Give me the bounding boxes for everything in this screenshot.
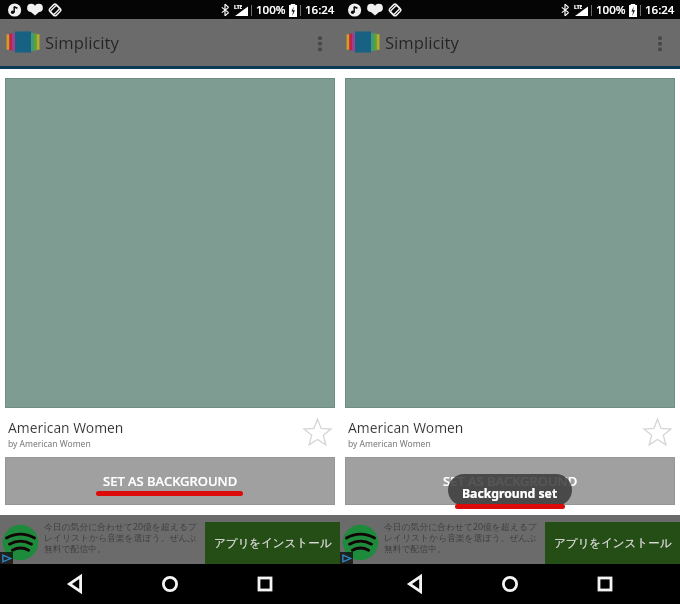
staticText: 100% bbox=[596, 2, 626, 18]
staticText: LTE bbox=[574, 4, 583, 11]
staticText: SET AS BACKGROUND bbox=[443, 472, 578, 490]
button[interactable]: Recent apps bbox=[245, 564, 285, 604]
button[interactable]: More options bbox=[640, 23, 680, 63]
button[interactable]: Back bbox=[55, 564, 95, 604]
staticText: 16:24 bbox=[645, 2, 675, 18]
staticText: LTE bbox=[234, 4, 243, 11]
button[interactable]: アプリをインストール bbox=[545, 522, 680, 564]
button[interactable]: More options bbox=[300, 23, 340, 63]
staticText: アプリをインストール bbox=[214, 536, 332, 550]
staticText: 今日の気分に合わせて20億を超えるプレイリストから音楽を選ぼう。ぜんぶ無料で配信… bbox=[384, 521, 540, 555]
staticText: 今日の気分に合わせて20億を超えるプレイリストから音楽を選ぼう。ぜんぶ無料で配信… bbox=[44, 521, 200, 555]
staticText: Background set bbox=[462, 485, 558, 502]
staticText: American Women bbox=[348, 418, 464, 437]
staticText: Simplicity bbox=[385, 31, 459, 53]
staticText: アプリをインストール bbox=[554, 536, 672, 550]
staticText: Simplicity bbox=[45, 31, 119, 53]
staticText: 16:24 bbox=[305, 2, 335, 18]
button[interactable]: Home bbox=[150, 564, 190, 604]
staticText: 100% bbox=[256, 2, 286, 18]
button[interactable]: Back bbox=[395, 564, 435, 604]
staticText: American Women bbox=[8, 418, 124, 437]
button[interactable]: Add to favorites bbox=[299, 414, 335, 450]
staticText: by American Women bbox=[348, 438, 431, 450]
button[interactable]: SET AS BACKGROUND bbox=[6, 458, 334, 504]
button[interactable]: Add to favorites bbox=[639, 414, 675, 450]
staticText: SET AS BACKGROUND bbox=[103, 472, 238, 490]
button[interactable]: Home bbox=[490, 564, 530, 604]
button[interactable]: アプリをインストール bbox=[205, 522, 340, 564]
button[interactable]: SET AS BACKGROUND bbox=[346, 458, 674, 504]
button[interactable]: Recent apps bbox=[585, 564, 625, 604]
staticText: by American Women bbox=[8, 438, 91, 450]
